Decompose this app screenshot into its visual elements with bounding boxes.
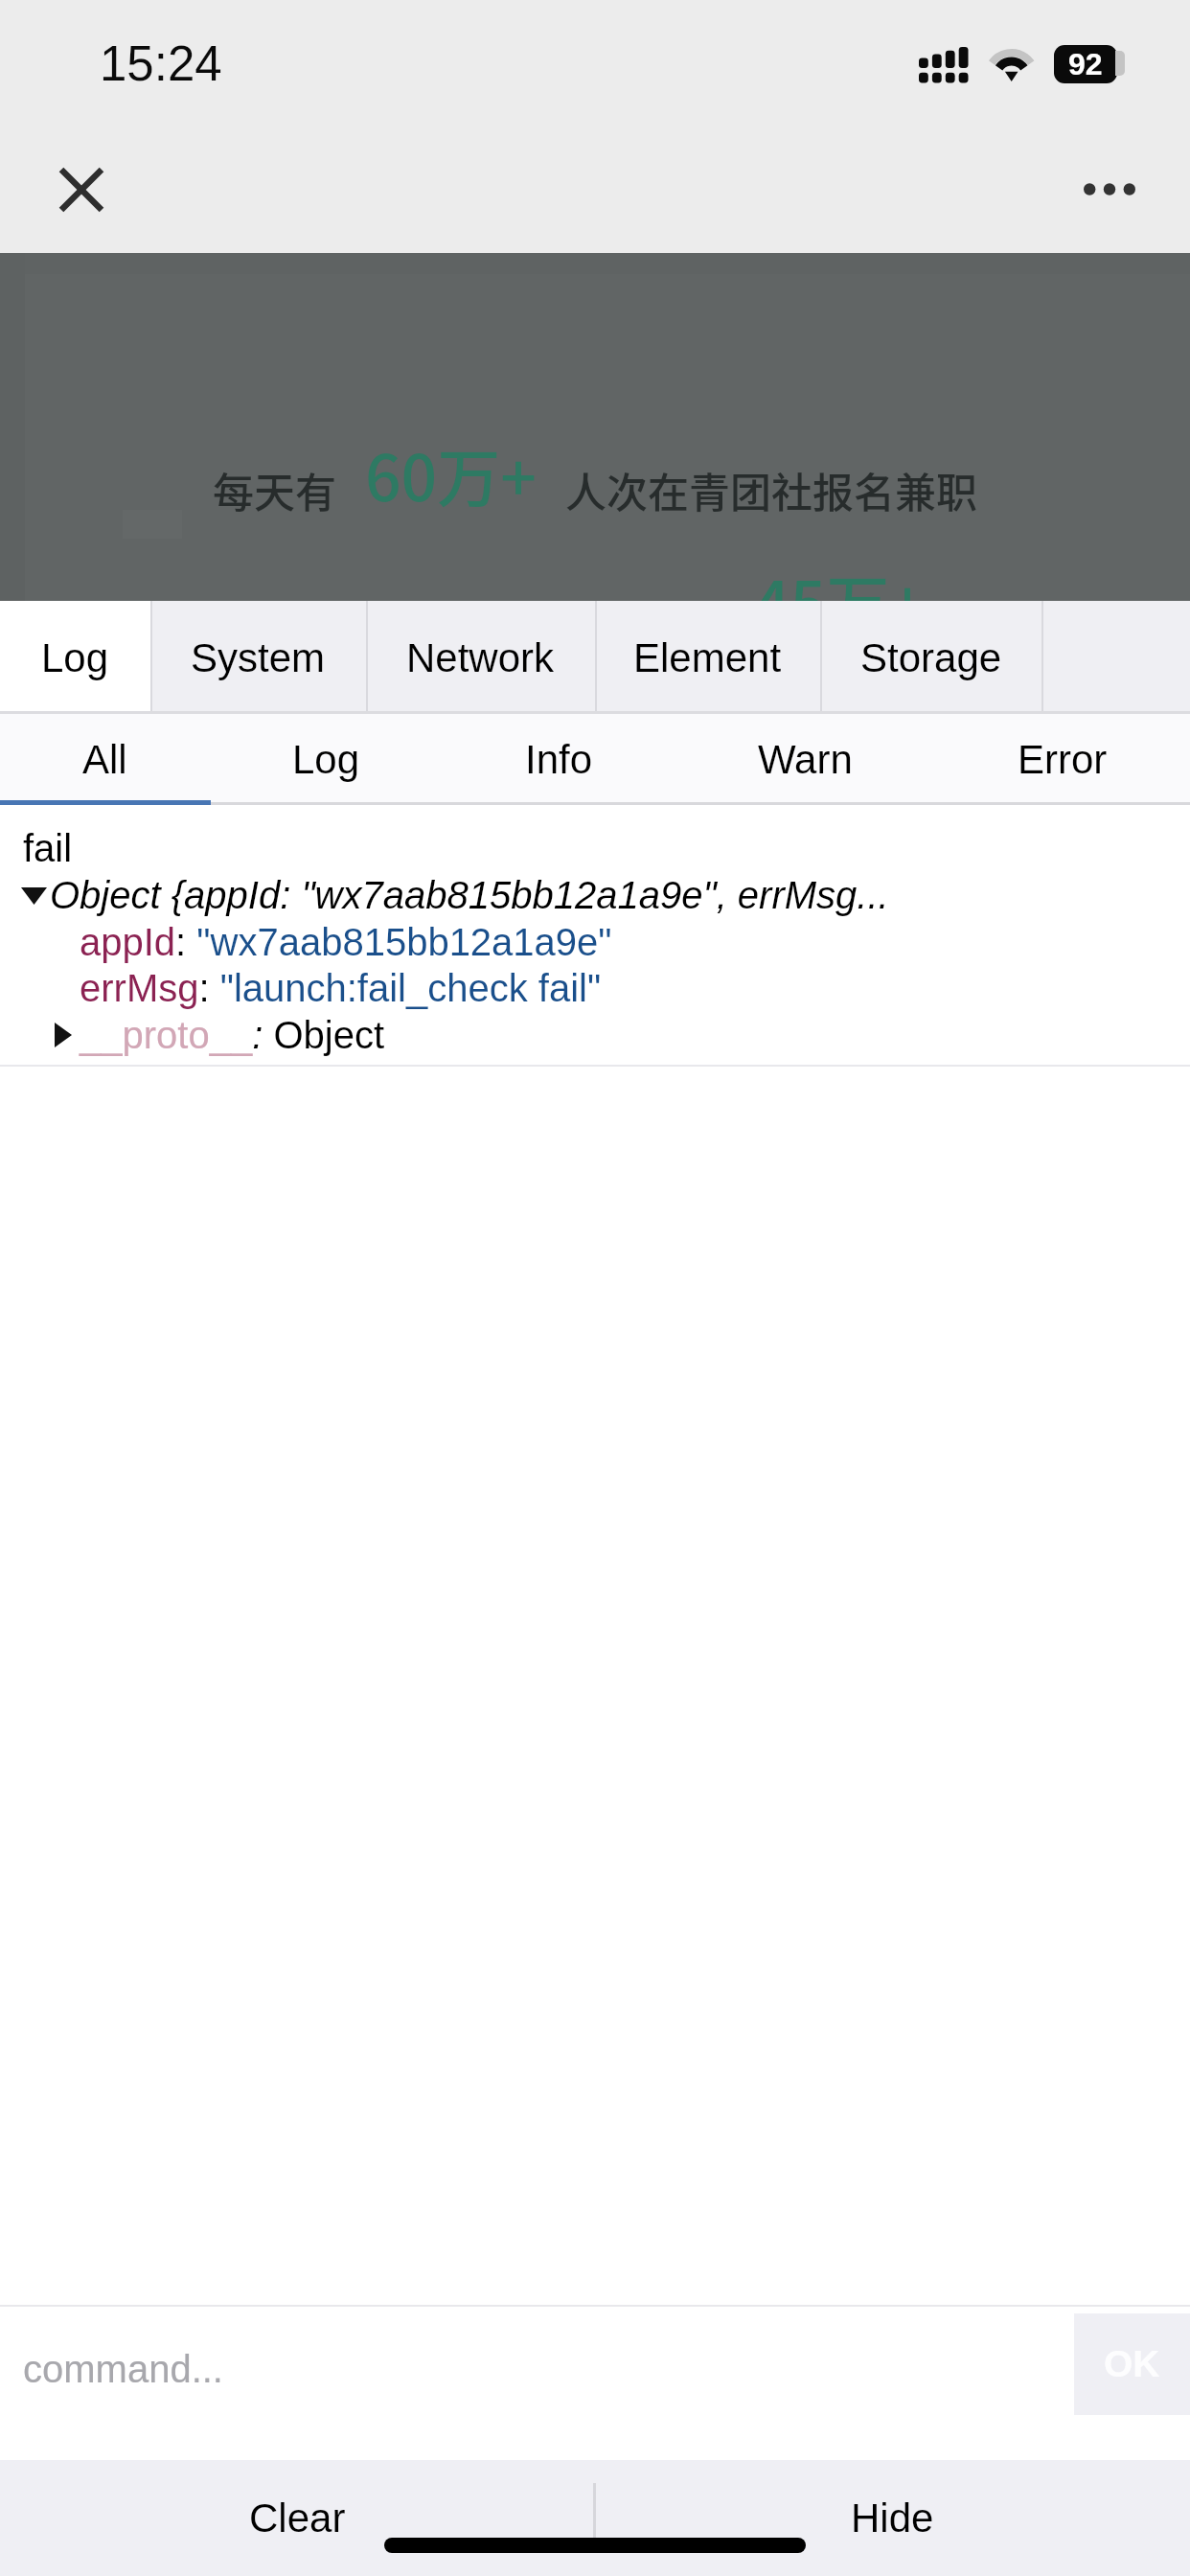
staticText: Clear — [249, 2495, 346, 2541]
staticText: 每天有 — [213, 460, 336, 519]
button[interactable]: All — [82, 714, 127, 805]
button[interactable]: Clear — [0, 2460, 595, 2576]
staticText: Warn — [758, 737, 853, 782]
button[interactable]: Log — [0, 601, 150, 714]
button[interactable]: Element — [595, 601, 820, 714]
staticText: 人次在青团社报名兼职 — [565, 460, 977, 519]
staticText: __proto__: Object — [80, 1014, 384, 1057]
button[interactable]: System — [150, 601, 366, 714]
staticText: Error — [1018, 737, 1108, 782]
staticText: 60万+ — [365, 427, 537, 519]
staticText: 15:24 — [100, 36, 222, 91]
staticText: appId: "wx7aab815bb12a1a9e" — [80, 921, 612, 964]
staticText: Log — [292, 737, 360, 782]
staticText: Object {appId: "wx7aab815bb12a1a9e", err… — [50, 874, 889, 917]
button[interactable]: Close — [24, 132, 139, 247]
button[interactable]: Storage — [820, 601, 1041, 714]
staticText: command... — [23, 2348, 223, 2391]
staticText: OK — [1104, 2343, 1160, 2385]
staticText: Info — [525, 737, 593, 782]
button[interactable]: More options — [1052, 131, 1167, 246]
staticText: Log — [41, 635, 109, 680]
staticText: Network — [406, 635, 555, 680]
staticText: fail — [23, 827, 73, 870]
staticText: System — [191, 635, 326, 680]
staticText: 45万+ — [754, 554, 926, 646]
staticText: errMsg: "launch:fail_check fail" — [80, 967, 602, 1010]
staticText: Element — [633, 635, 782, 680]
staticText: All — [82, 737, 127, 782]
button[interactable]: Error — [1018, 714, 1108, 805]
button[interactable]: Info — [525, 714, 593, 805]
staticText: Storage — [860, 635, 1002, 680]
button[interactable]: OK — [1074, 2313, 1190, 2415]
button[interactable]: Hide — [595, 2460, 1190, 2576]
staticText: Hide — [851, 2495, 934, 2541]
button[interactable]: Log — [292, 714, 360, 805]
staticText: 92 — [1068, 47, 1103, 81]
button[interactable]: Warn — [758, 714, 853, 805]
button[interactable]: Network — [366, 601, 595, 714]
